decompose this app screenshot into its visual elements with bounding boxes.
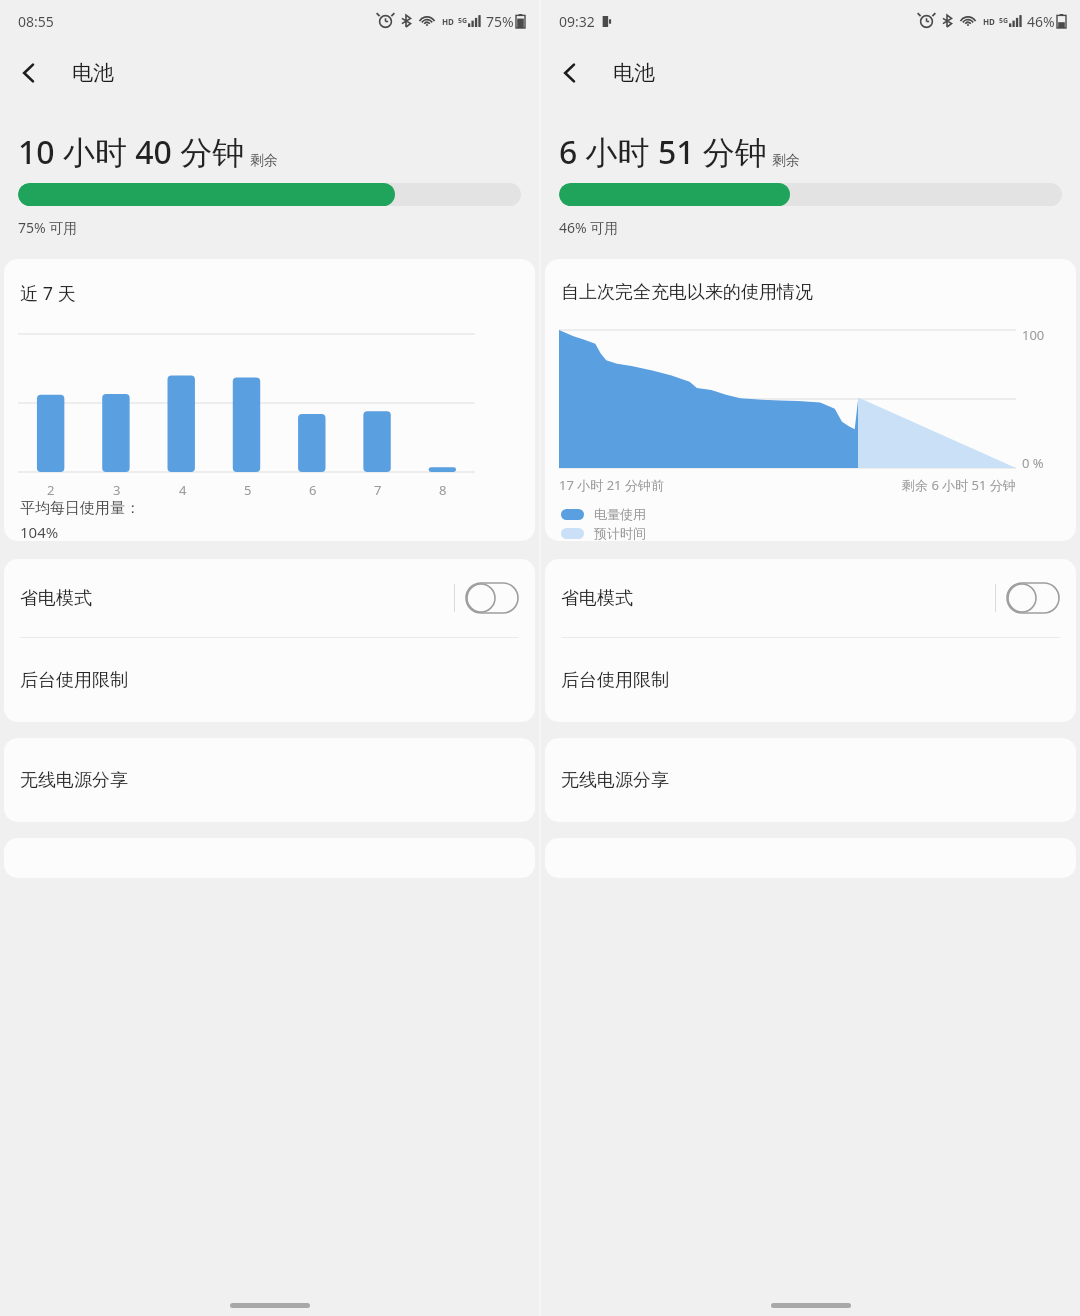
staticText: 省电模式 [561, 587, 633, 610]
staticText: 6 [309, 481, 317, 499]
staticText: 剩余 [772, 152, 800, 170]
staticText: 5 [244, 481, 252, 499]
staticText: HD [442, 16, 454, 27]
staticText: 8 [439, 481, 447, 499]
staticText: 电池 [613, 60, 655, 86]
staticText: 46% [1027, 12, 1055, 31]
staticText: 剩余 6 小时 51 分钟 [902, 476, 1016, 494]
button[interactable]: Back [541, 44, 599, 102]
staticText: 75% 可用 [18, 218, 78, 237]
staticText: 电量使用 [594, 506, 646, 522]
button[interactable]: 自上次完全充电以来的使用情况 [545, 259, 1076, 541]
staticText: 100 [1022, 326, 1045, 344]
button[interactable]: 无线电源分享 [4, 738, 535, 822]
staticText: 5G [999, 16, 1009, 26]
staticText: 无线电源分享 [561, 769, 669, 792]
button[interactable]: 省电模式 [545, 559, 1076, 637]
staticText: 剩余 [250, 152, 278, 170]
button[interactable]: 后台使用限制 [4, 638, 535, 722]
staticText: 08:55 [18, 12, 54, 31]
staticText: 省电模式 [20, 587, 92, 610]
button[interactable]: 后台使用限制 [545, 638, 1076, 722]
staticText: 75% [486, 12, 514, 31]
staticText: 104% [20, 522, 59, 541]
staticText: 10 小时 40 分钟 [18, 130, 245, 174]
staticText: 3 [113, 481, 121, 499]
staticText: 自上次完全充电以来的使用情况 [561, 281, 813, 304]
staticText: 4 [179, 481, 187, 499]
button[interactable]: 近 7 天 [4, 259, 535, 541]
button[interactable]: 无线电源分享 [545, 738, 1076, 822]
staticText: 平均每日使用量： [20, 499, 140, 518]
staticText: 0 % [1022, 454, 1044, 472]
staticText: 近 7 天 [20, 281, 76, 306]
staticText: 无线电源分享 [20, 769, 128, 792]
staticText: 后台使用限制 [20, 669, 128, 692]
staticText: 后台使用限制 [561, 669, 669, 692]
button[interactable]: Power saving toggle [996, 568, 1070, 628]
staticText: 电池 [72, 60, 114, 86]
button[interactable]: Back [0, 44, 58, 102]
staticText: 预计时间 [594, 525, 646, 541]
staticText: 17 小时 21 分钟前 [559, 476, 664, 494]
staticText: 7 [374, 481, 382, 499]
staticText: 46% 可用 [559, 218, 619, 237]
staticText: 6 小时 51 分钟 [559, 130, 767, 174]
staticText: HD [983, 16, 995, 27]
staticText: 5G [458, 16, 468, 26]
button[interactable]: 省电模式 [4, 559, 535, 637]
button[interactable]: Power saving toggle [455, 568, 529, 628]
staticText: 09:32 [559, 12, 595, 31]
staticText: 2 [47, 481, 55, 499]
